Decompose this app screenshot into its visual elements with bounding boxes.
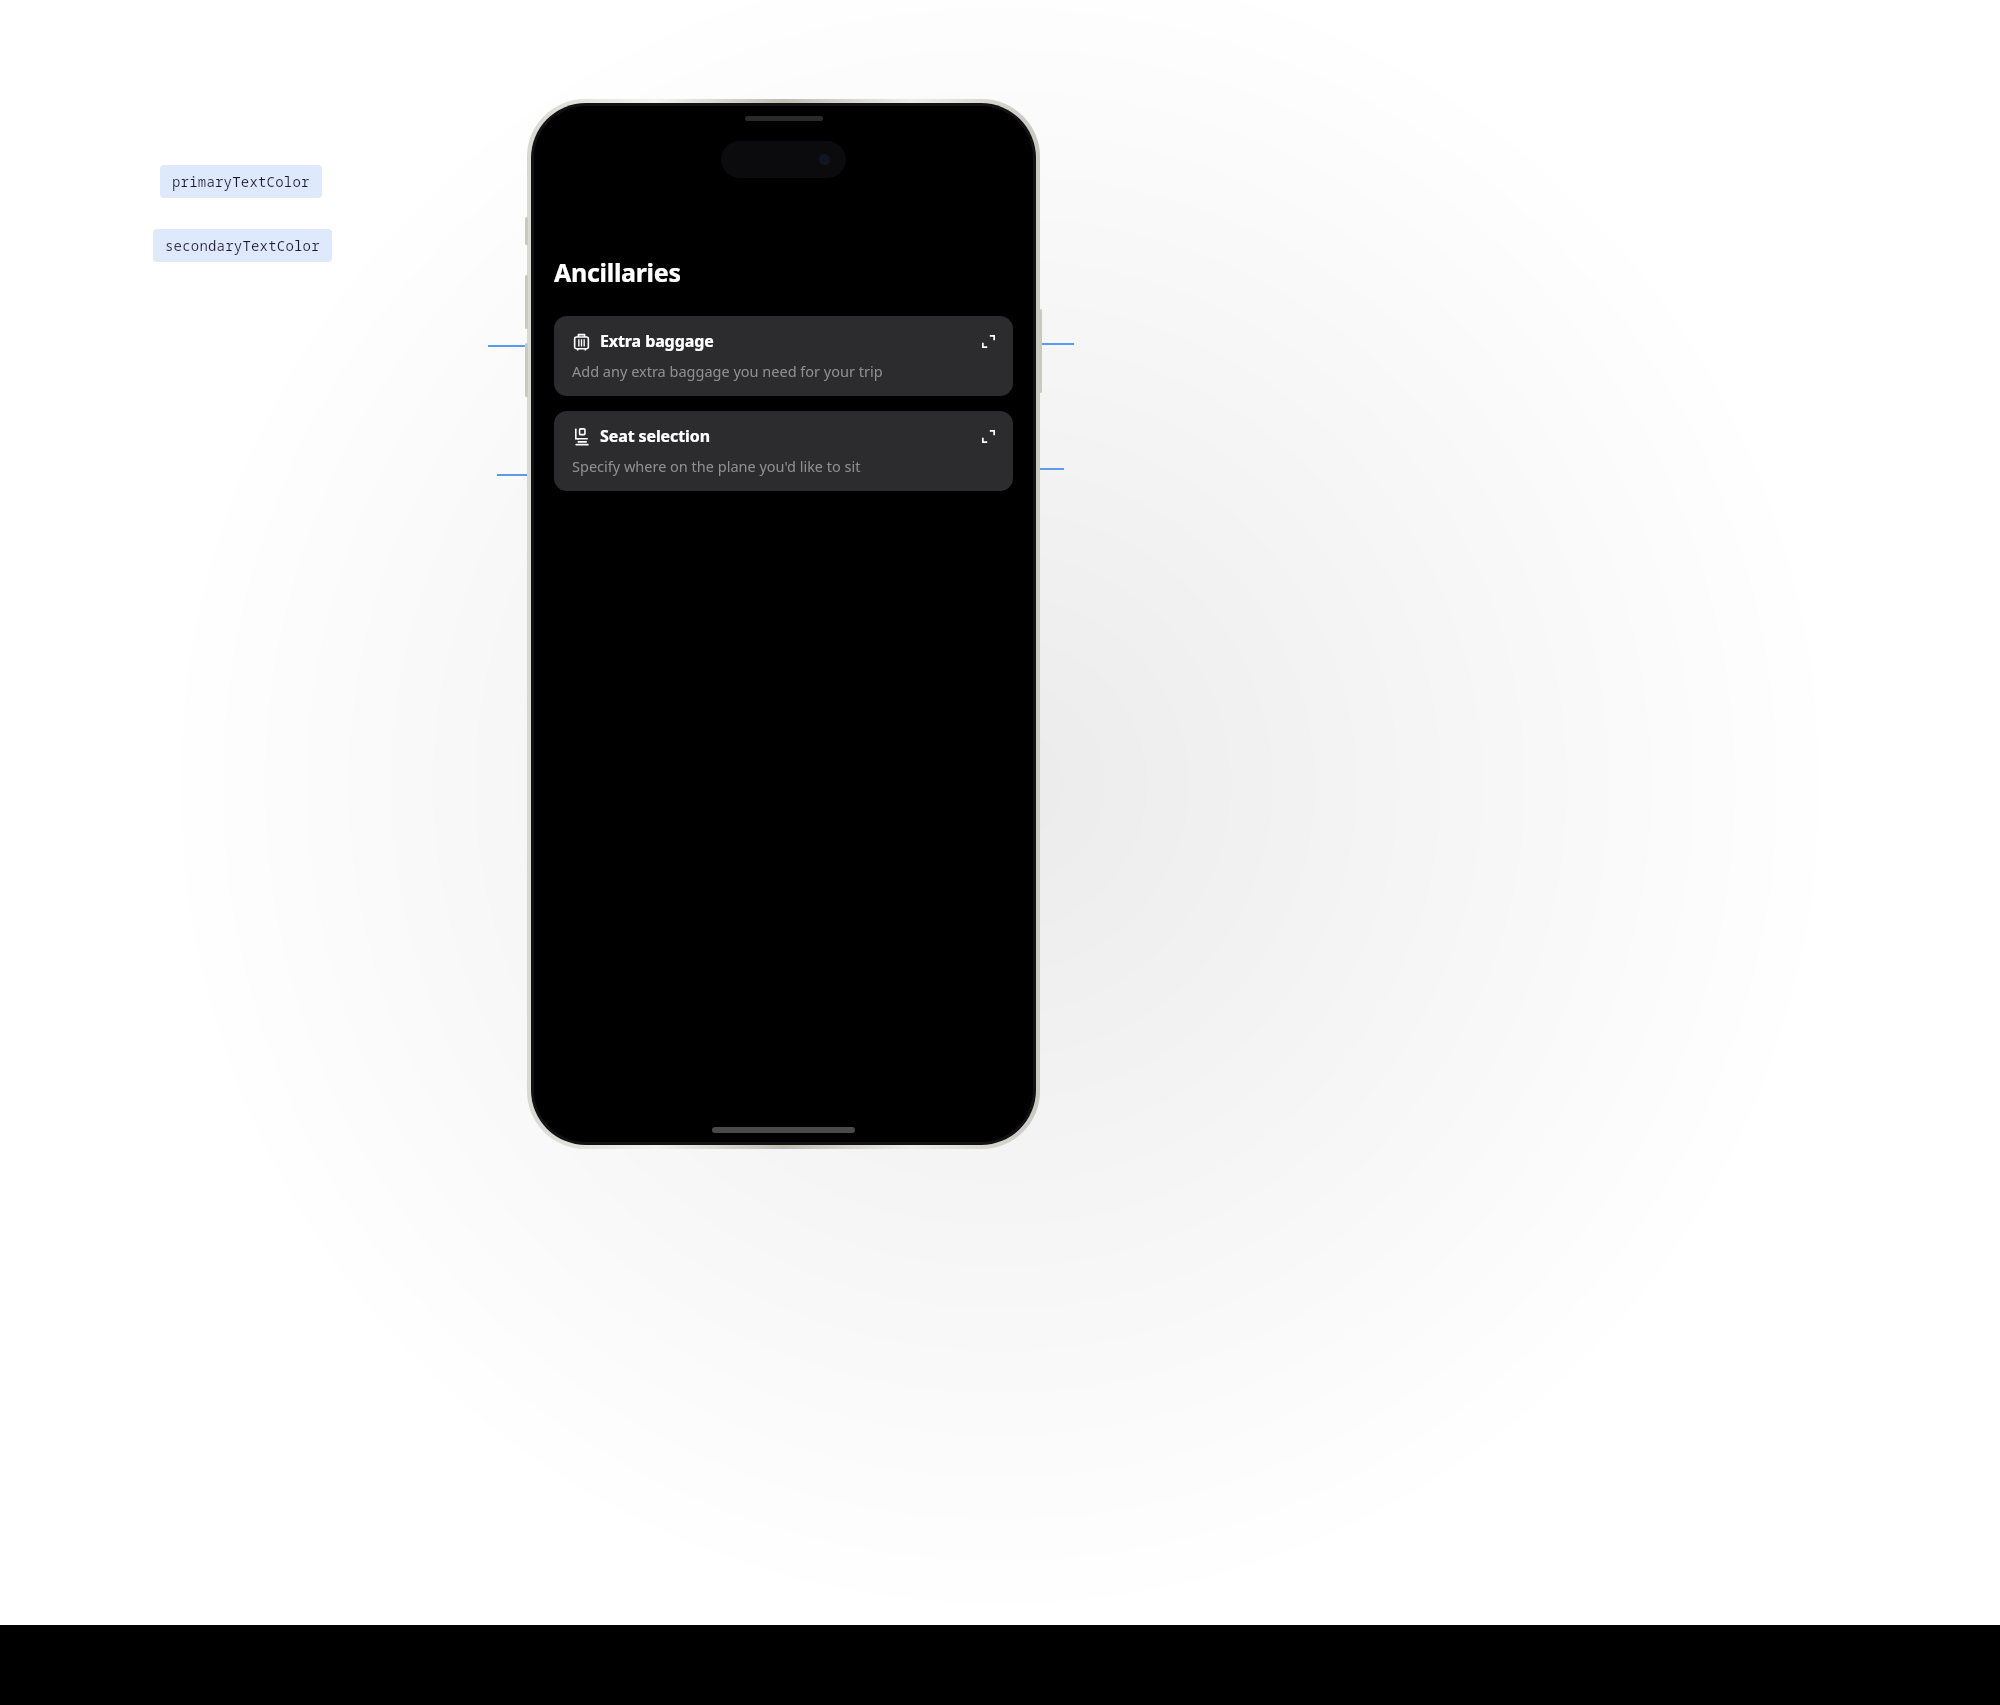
staticText: Seat selection — [600, 425, 710, 447]
staticText: Specify where on the plane you'd like to… — [572, 456, 861, 476]
button[interactable]: Extra baggage — [554, 316, 1013, 396]
button[interactable]: Expand Extra baggage — [977, 330, 999, 352]
staticText: Extra baggage — [600, 330, 714, 352]
staticText: secondaryTextColor — [165, 236, 320, 255]
staticText: Add any extra baggage you need for your … — [572, 361, 883, 381]
staticText: Ancillaries — [554, 255, 681, 289]
staticText: primaryTextColor — [172, 172, 310, 191]
button[interactable]: Seat selection — [554, 411, 1013, 491]
button[interactable]: Expand Seat selection — [977, 425, 999, 447]
